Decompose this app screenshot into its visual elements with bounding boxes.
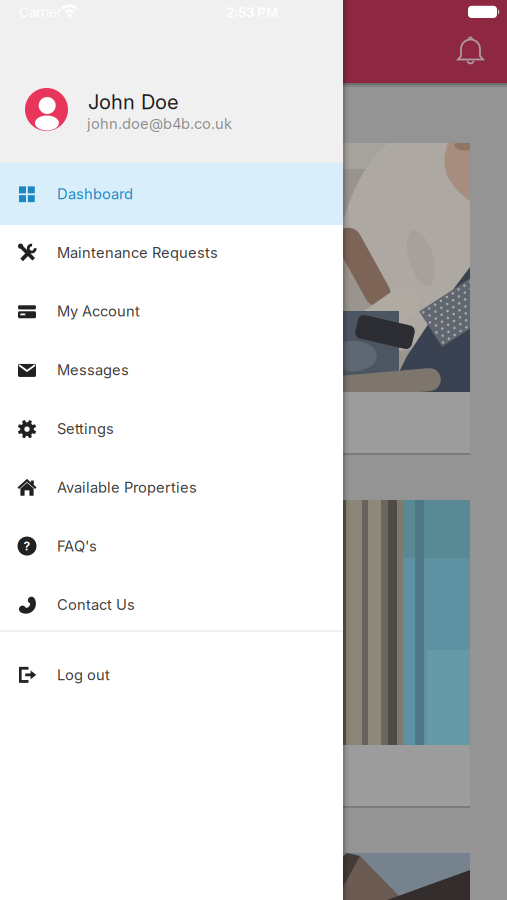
staticText: Maintenance Requests [57,244,218,261]
staticText: Log out [57,666,110,683]
button[interactable]: Contact Us [0,575,343,634]
staticText: Messages [57,361,129,379]
staticText: Settings [57,420,114,437]
staticText: Dashboard [57,185,133,202]
button[interactable]: Dashboard [0,164,343,223]
staticText: ? [23,539,30,553]
button[interactable]: Notifications [0,0,507,900]
staticText: FAQ's [57,537,97,555]
staticText: john.doe@b4b.co.uk [87,115,232,132]
staticText: Carrier [19,5,62,20]
button[interactable]: Settings [0,399,343,458]
staticText: John Doe [88,90,179,114]
staticText: Available Properties [57,479,197,496]
button[interactable]: Available Properties [0,458,343,517]
button[interactable]: Log out [0,645,343,704]
staticText: My Account [57,303,140,320]
button[interactable]: My Account [0,282,343,341]
staticText: 2:53 PM [226,5,278,20]
button[interactable]: Messages [0,341,343,399]
staticText: Contact Us [57,596,135,613]
button[interactable]: Maintenance Requests [0,223,343,282]
button[interactable]: ? [0,517,343,575]
